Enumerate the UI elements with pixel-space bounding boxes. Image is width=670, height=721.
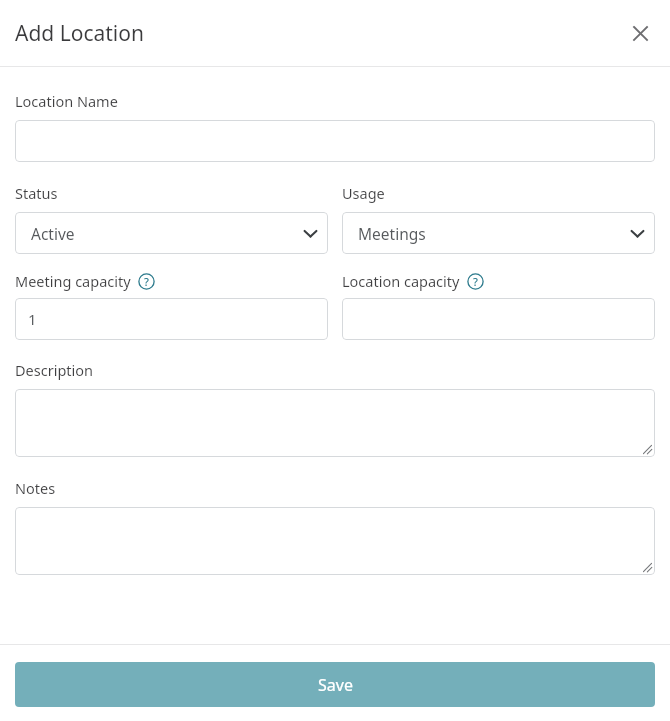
- button[interactable]: Description: [15, 389, 655, 457]
- staticText: Notes: [15, 478, 56, 498]
- button[interactable]: Location capacity: [342, 298, 655, 340]
- button[interactable]: Location Name: [15, 120, 655, 162]
- staticText: Add Location: [15, 19, 144, 48]
- button[interactable]: Notes: [15, 507, 655, 575]
- button[interactable]: Location capacity help: [467, 273, 484, 290]
- staticText: Location capacity: [342, 271, 460, 291]
- staticText: Meetings: [358, 223, 426, 244]
- button[interactable]: Meetings: [342, 212, 655, 254]
- staticText: Save: [318, 674, 353, 696]
- button[interactable]: Active: [15, 212, 328, 254]
- staticText: Usage: [342, 183, 385, 203]
- button[interactable]: Close: [622, 15, 658, 51]
- button[interactable]: Meeting capacity: [15, 298, 328, 340]
- staticText: Active: [31, 223, 75, 244]
- button[interactable]: Save: [15, 662, 655, 707]
- button[interactable]: Meeting capacity help: [138, 273, 155, 290]
- staticText: Status: [15, 183, 58, 203]
- staticText: ?: [144, 274, 149, 289]
- staticText: Location Name: [15, 91, 118, 111]
- staticText: ?: [473, 274, 478, 289]
- staticText: Meeting capacity: [15, 271, 131, 291]
- staticText: 1: [28, 309, 37, 329]
- staticText: Description: [15, 360, 94, 380]
